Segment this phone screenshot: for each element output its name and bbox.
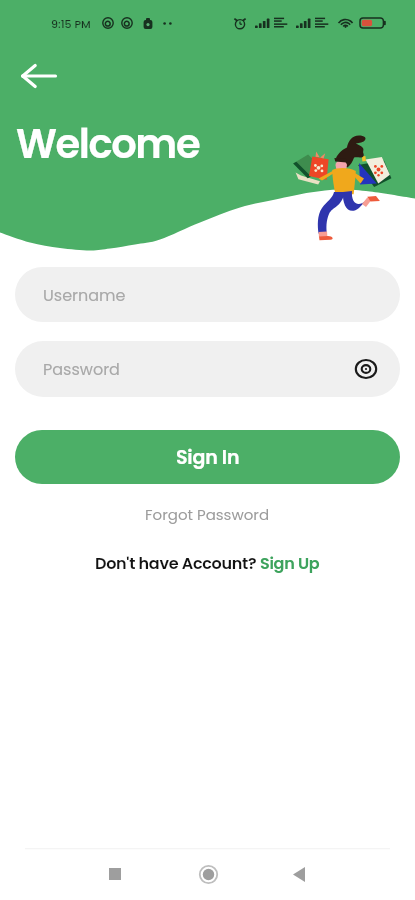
button[interactable]: Password [15,341,400,397]
staticText: Username [43,284,126,306]
button[interactable]: Forgot Password [145,504,270,525]
staticText: 9:15 PM [51,16,91,31]
button[interactable]: Home [188,854,228,894]
button[interactable]: Don't have Account? [95,552,320,574]
button[interactable]: Username [15,267,400,322]
button[interactable]: Show password [354,358,378,380]
staticText: Sign Up [260,552,320,574]
button[interactable]: Back [11,54,57,98]
staticText: Password [43,358,120,380]
staticText: Welcome [16,116,200,172]
staticText: Don't have Account? [95,552,260,574]
button[interactable]: Sign In [15,430,400,484]
button[interactable]: Recents [95,854,135,894]
staticText: Sign In [176,444,240,471]
button[interactable]: Back [279,854,319,894]
